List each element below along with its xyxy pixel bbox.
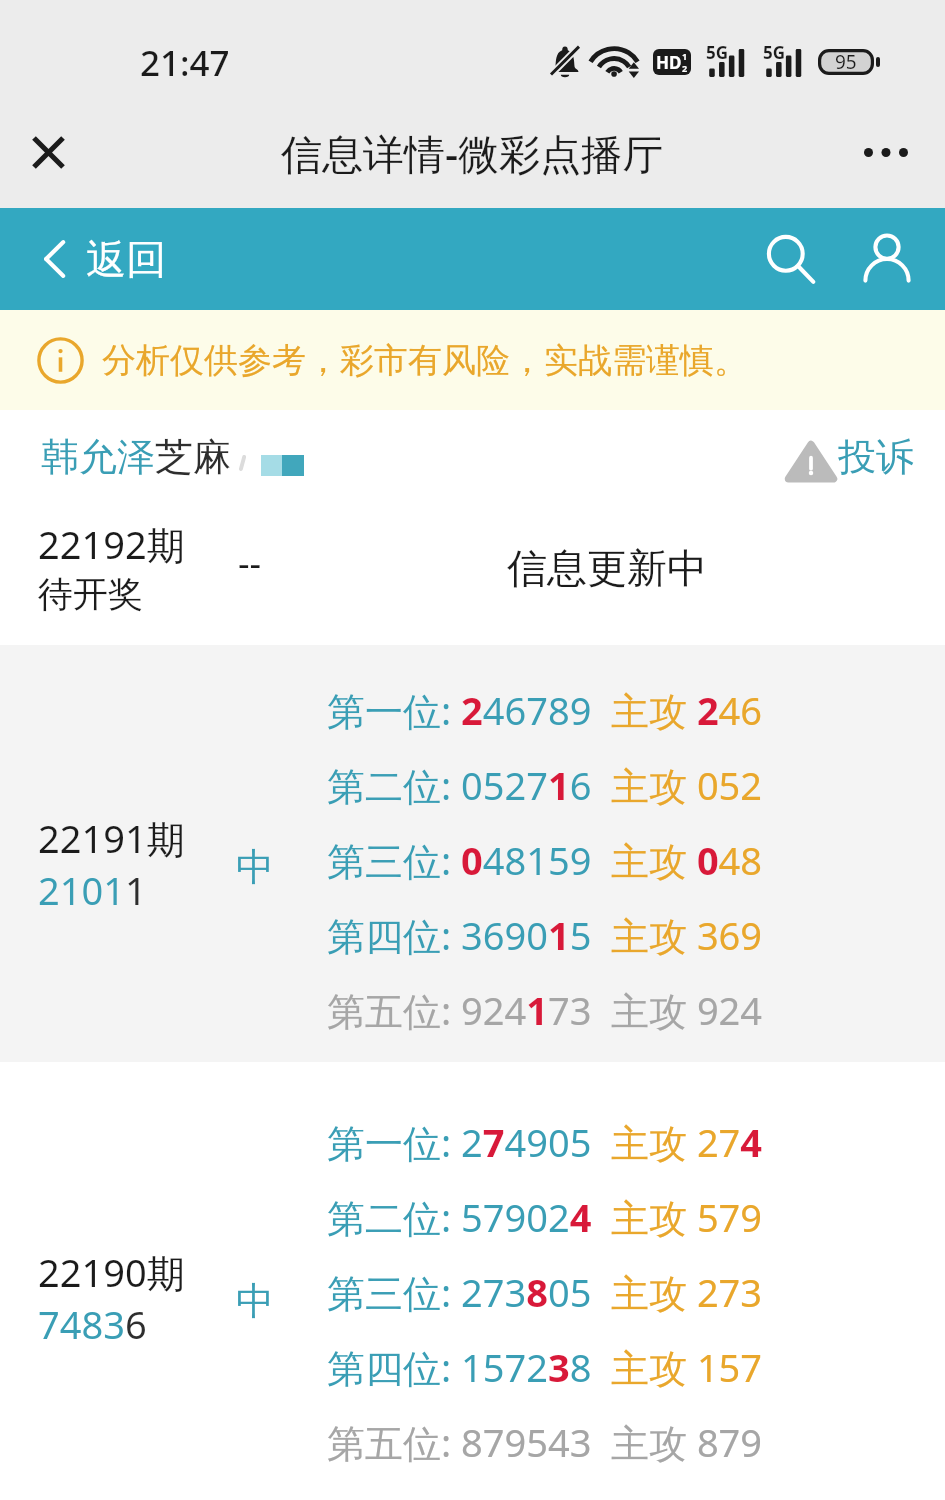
staticText: 待开奖 bbox=[38, 572, 143, 616]
staticText: 74836 bbox=[38, 1298, 147, 1350]
staticText: 21011 bbox=[38, 864, 147, 916]
button[interactable]: 韩允泽芝麻 bbox=[41, 410, 304, 504]
staticText: 主攻 157 bbox=[611, 1341, 763, 1393]
staticText: 第五位: 924173 bbox=[327, 984, 592, 1036]
staticText: 5G bbox=[763, 41, 786, 64]
staticText: 21:47 bbox=[140, 39, 230, 87]
staticText: 主攻 048 bbox=[611, 834, 763, 886]
button[interactable]: 22192期 bbox=[0, 504, 945, 644]
staticText: 韩允泽芝麻 bbox=[41, 433, 231, 481]
staticText: -- bbox=[238, 538, 262, 587]
staticText: 主攻 879 bbox=[611, 1416, 763, 1468]
staticText: 22192期 bbox=[38, 518, 185, 570]
staticText: 主攻 274 bbox=[611, 1116, 763, 1168]
staticText: HD bbox=[656, 51, 682, 74]
staticText: 22191期 bbox=[38, 812, 185, 864]
staticText: 第三位: 273805 bbox=[327, 1266, 592, 1318]
staticText: 2 bbox=[682, 62, 688, 74]
staticText: 分析仅供参考，彩市有风险，实战需谨慎。 bbox=[102, 339, 748, 382]
button[interactable]: Search bbox=[748, 208, 834, 310]
staticText: 第一位: 246789 bbox=[327, 684, 592, 736]
staticText: 主攻 369 bbox=[611, 909, 763, 961]
staticText: 中 bbox=[236, 1277, 274, 1325]
staticText: 22190期 bbox=[38, 1246, 185, 1298]
staticText: 主攻 246 bbox=[611, 684, 763, 736]
staticText: 第二位: 052716 bbox=[327, 759, 592, 811]
staticText: 第二位: 579024 bbox=[327, 1191, 592, 1243]
staticText: 95 bbox=[835, 49, 857, 75]
staticText: 信息更新中 bbox=[507, 543, 707, 593]
staticText: 第四位: 157238 bbox=[327, 1341, 592, 1393]
button[interactable]: 投诉 bbox=[786, 410, 914, 504]
button[interactable]: More options bbox=[854, 120, 918, 184]
staticText: 信息详情-微彩点播厅 bbox=[281, 125, 664, 181]
button[interactable]: Close bbox=[16, 120, 80, 184]
staticText: 第三位: 048159 bbox=[327, 834, 592, 886]
button[interactable]: Profile bbox=[844, 208, 930, 310]
staticText: 第五位: 879543 bbox=[327, 1416, 592, 1468]
button[interactable]: 22190期 bbox=[0, 1075, 945, 1492]
staticText: 主攻 273 bbox=[611, 1266, 763, 1318]
staticText: 第一位: 274905 bbox=[327, 1116, 592, 1168]
staticText: 返回 bbox=[86, 234, 166, 284]
staticText: 1 bbox=[682, 50, 688, 62]
staticText: 5G bbox=[706, 41, 729, 64]
staticText: 主攻 924 bbox=[611, 984, 763, 1036]
staticText: 第四位: 369015 bbox=[327, 909, 592, 961]
staticText: 投诉 bbox=[838, 433, 914, 481]
staticText: 主攻 052 bbox=[611, 759, 763, 811]
staticText: 主攻 579 bbox=[611, 1191, 763, 1243]
button[interactable]: 22191期 bbox=[0, 645, 945, 1062]
staticText: 中 bbox=[236, 843, 274, 891]
button[interactable]: 返回 bbox=[44, 208, 422, 310]
